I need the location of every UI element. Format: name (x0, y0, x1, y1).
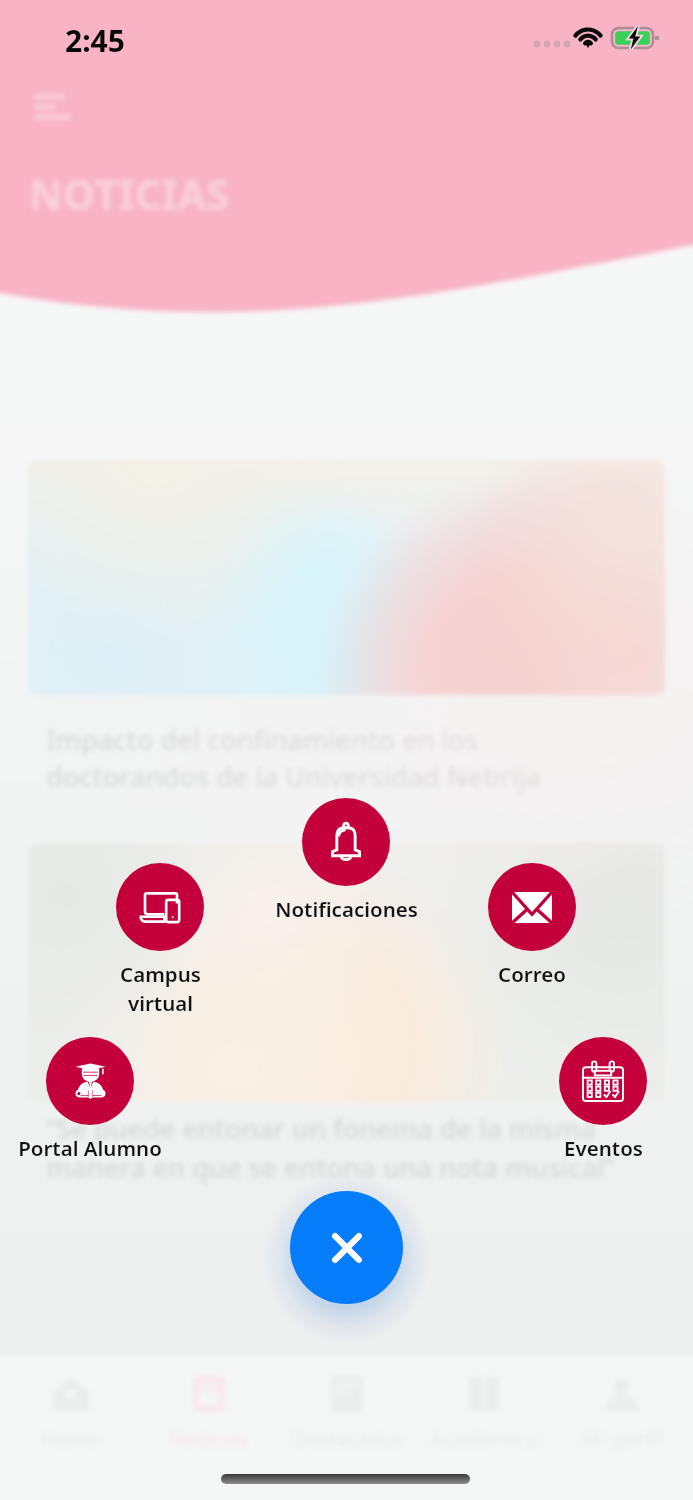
button[interactable]: Notificaciones (302, 798, 390, 886)
staticText: NOTICIAS (29, 166, 230, 222)
button[interactable]: Portal Alumno (46, 1037, 134, 1125)
button[interactable]: Close menu (290, 1191, 403, 1304)
staticText: Portal Alumno (18, 1134, 162, 1162)
button[interactable]: Eventos (559, 1037, 647, 1125)
staticText: Impacto del confinamiento en los doctora… (46, 721, 542, 795)
staticText: Eventos (564, 1134, 643, 1162)
staticText: Notificaciones (275, 895, 418, 923)
button[interactable]: Menu (36, 94, 72, 122)
staticText: Campus virtual (120, 960, 201, 1017)
button[interactable]: Campus virtual (116, 863, 204, 951)
button[interactable]: Noticias (142, 1369, 276, 1454)
button[interactable]: Correo (488, 863, 576, 951)
staticText: “Se puede entonar un fonema de la misma … (46, 1110, 615, 1186)
staticText: 2:45 (65, 20, 125, 61)
staticText: Correo (498, 960, 566, 988)
